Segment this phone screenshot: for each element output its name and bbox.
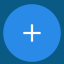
button[interactable]: Add [0,0,64,64]
